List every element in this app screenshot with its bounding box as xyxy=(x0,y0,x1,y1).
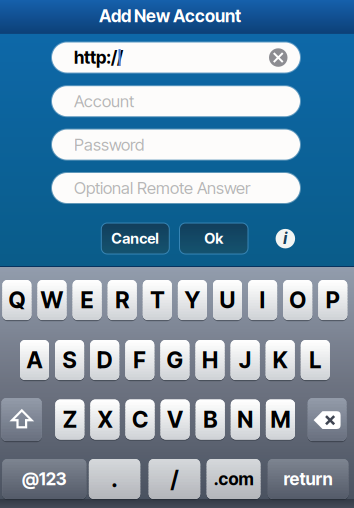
button[interactable]: X xyxy=(90,399,119,439)
button[interactable]: R xyxy=(108,280,137,320)
staticText: A xyxy=(26,346,42,374)
staticText: J xyxy=(239,346,251,374)
button[interactable]: N xyxy=(231,399,260,439)
button[interactable]: T xyxy=(143,280,172,320)
staticText: @123 xyxy=(22,468,67,489)
staticText: Optional Remote Answer xyxy=(74,178,250,198)
button[interactable]: @123 xyxy=(2,459,86,499)
staticText: X xyxy=(97,406,112,433)
staticText: D xyxy=(97,346,113,374)
staticText: T xyxy=(150,286,164,314)
staticText: E xyxy=(81,286,94,314)
button[interactable]: I xyxy=(248,280,277,320)
button[interactable]: return xyxy=(268,459,348,499)
staticText: Q xyxy=(8,286,25,314)
staticText: C xyxy=(132,406,148,433)
staticText: H xyxy=(202,346,218,374)
staticText: http:// xyxy=(74,47,123,68)
button[interactable]: http:// xyxy=(53,43,301,73)
button[interactable]: Z xyxy=(55,399,84,439)
button[interactable]: E xyxy=(73,280,102,320)
button[interactable]: Optional Remote Answer xyxy=(53,174,301,204)
button[interactable]: Cancel xyxy=(101,223,169,254)
button[interactable]: Q xyxy=(2,280,31,320)
staticText: U xyxy=(219,286,235,314)
button[interactable]: Y xyxy=(178,280,207,320)
staticText: M xyxy=(270,406,290,433)
button[interactable]: A xyxy=(20,340,49,380)
button[interactable]: / xyxy=(149,459,200,499)
staticText: Y xyxy=(184,286,200,314)
staticText: Z xyxy=(63,406,77,433)
staticText: P xyxy=(326,286,340,314)
staticText: Ok xyxy=(204,230,223,247)
staticText: Cancel xyxy=(111,230,159,247)
staticText: R xyxy=(115,286,129,314)
button[interactable]: W xyxy=(37,280,66,320)
button[interactable]: J xyxy=(231,340,260,380)
button[interactable]: . xyxy=(89,459,140,499)
button[interactable]: Key xyxy=(308,398,346,441)
staticText: W xyxy=(40,286,63,314)
button[interactable]: B xyxy=(196,399,225,439)
button[interactable]: G xyxy=(160,340,189,380)
staticText: .com xyxy=(213,468,253,489)
button[interactable]: S xyxy=(55,340,84,380)
button[interactable]: O xyxy=(283,280,312,320)
button[interactable]: L xyxy=(301,340,330,380)
staticText: L xyxy=(309,346,321,374)
staticText: N xyxy=(237,406,253,433)
staticText: B xyxy=(203,406,217,433)
staticText: V xyxy=(167,406,183,433)
staticText: return xyxy=(284,468,333,489)
button[interactable]: D xyxy=(90,340,119,380)
staticText: G xyxy=(166,346,183,374)
staticText: O xyxy=(289,286,306,314)
button[interactable]: V xyxy=(161,399,190,439)
staticText: Account xyxy=(74,91,134,111)
button[interactable]: .com xyxy=(207,459,260,499)
button[interactable]: K xyxy=(266,340,295,380)
staticText: i xyxy=(283,228,287,248)
staticText: . xyxy=(111,465,118,493)
button[interactable]: C xyxy=(125,399,154,439)
staticText: Add New Account xyxy=(99,5,241,26)
button[interactable]: Account xyxy=(53,87,301,117)
button[interactable]: H xyxy=(195,340,224,380)
button[interactable]: Info xyxy=(276,229,295,248)
button[interactable]: M xyxy=(266,399,295,439)
staticText: F xyxy=(133,346,146,374)
button[interactable]: P xyxy=(318,280,347,320)
button[interactable]: Password xyxy=(53,131,301,161)
staticText: S xyxy=(63,346,77,374)
staticText: Password xyxy=(74,134,144,155)
button[interactable]: U xyxy=(213,280,242,320)
button[interactable]: Ok xyxy=(179,223,248,254)
button[interactable]: Key xyxy=(1,398,42,441)
staticText: I xyxy=(260,286,266,314)
staticText: K xyxy=(273,346,288,374)
staticText: / xyxy=(170,465,178,493)
button[interactable]: F xyxy=(125,340,154,380)
